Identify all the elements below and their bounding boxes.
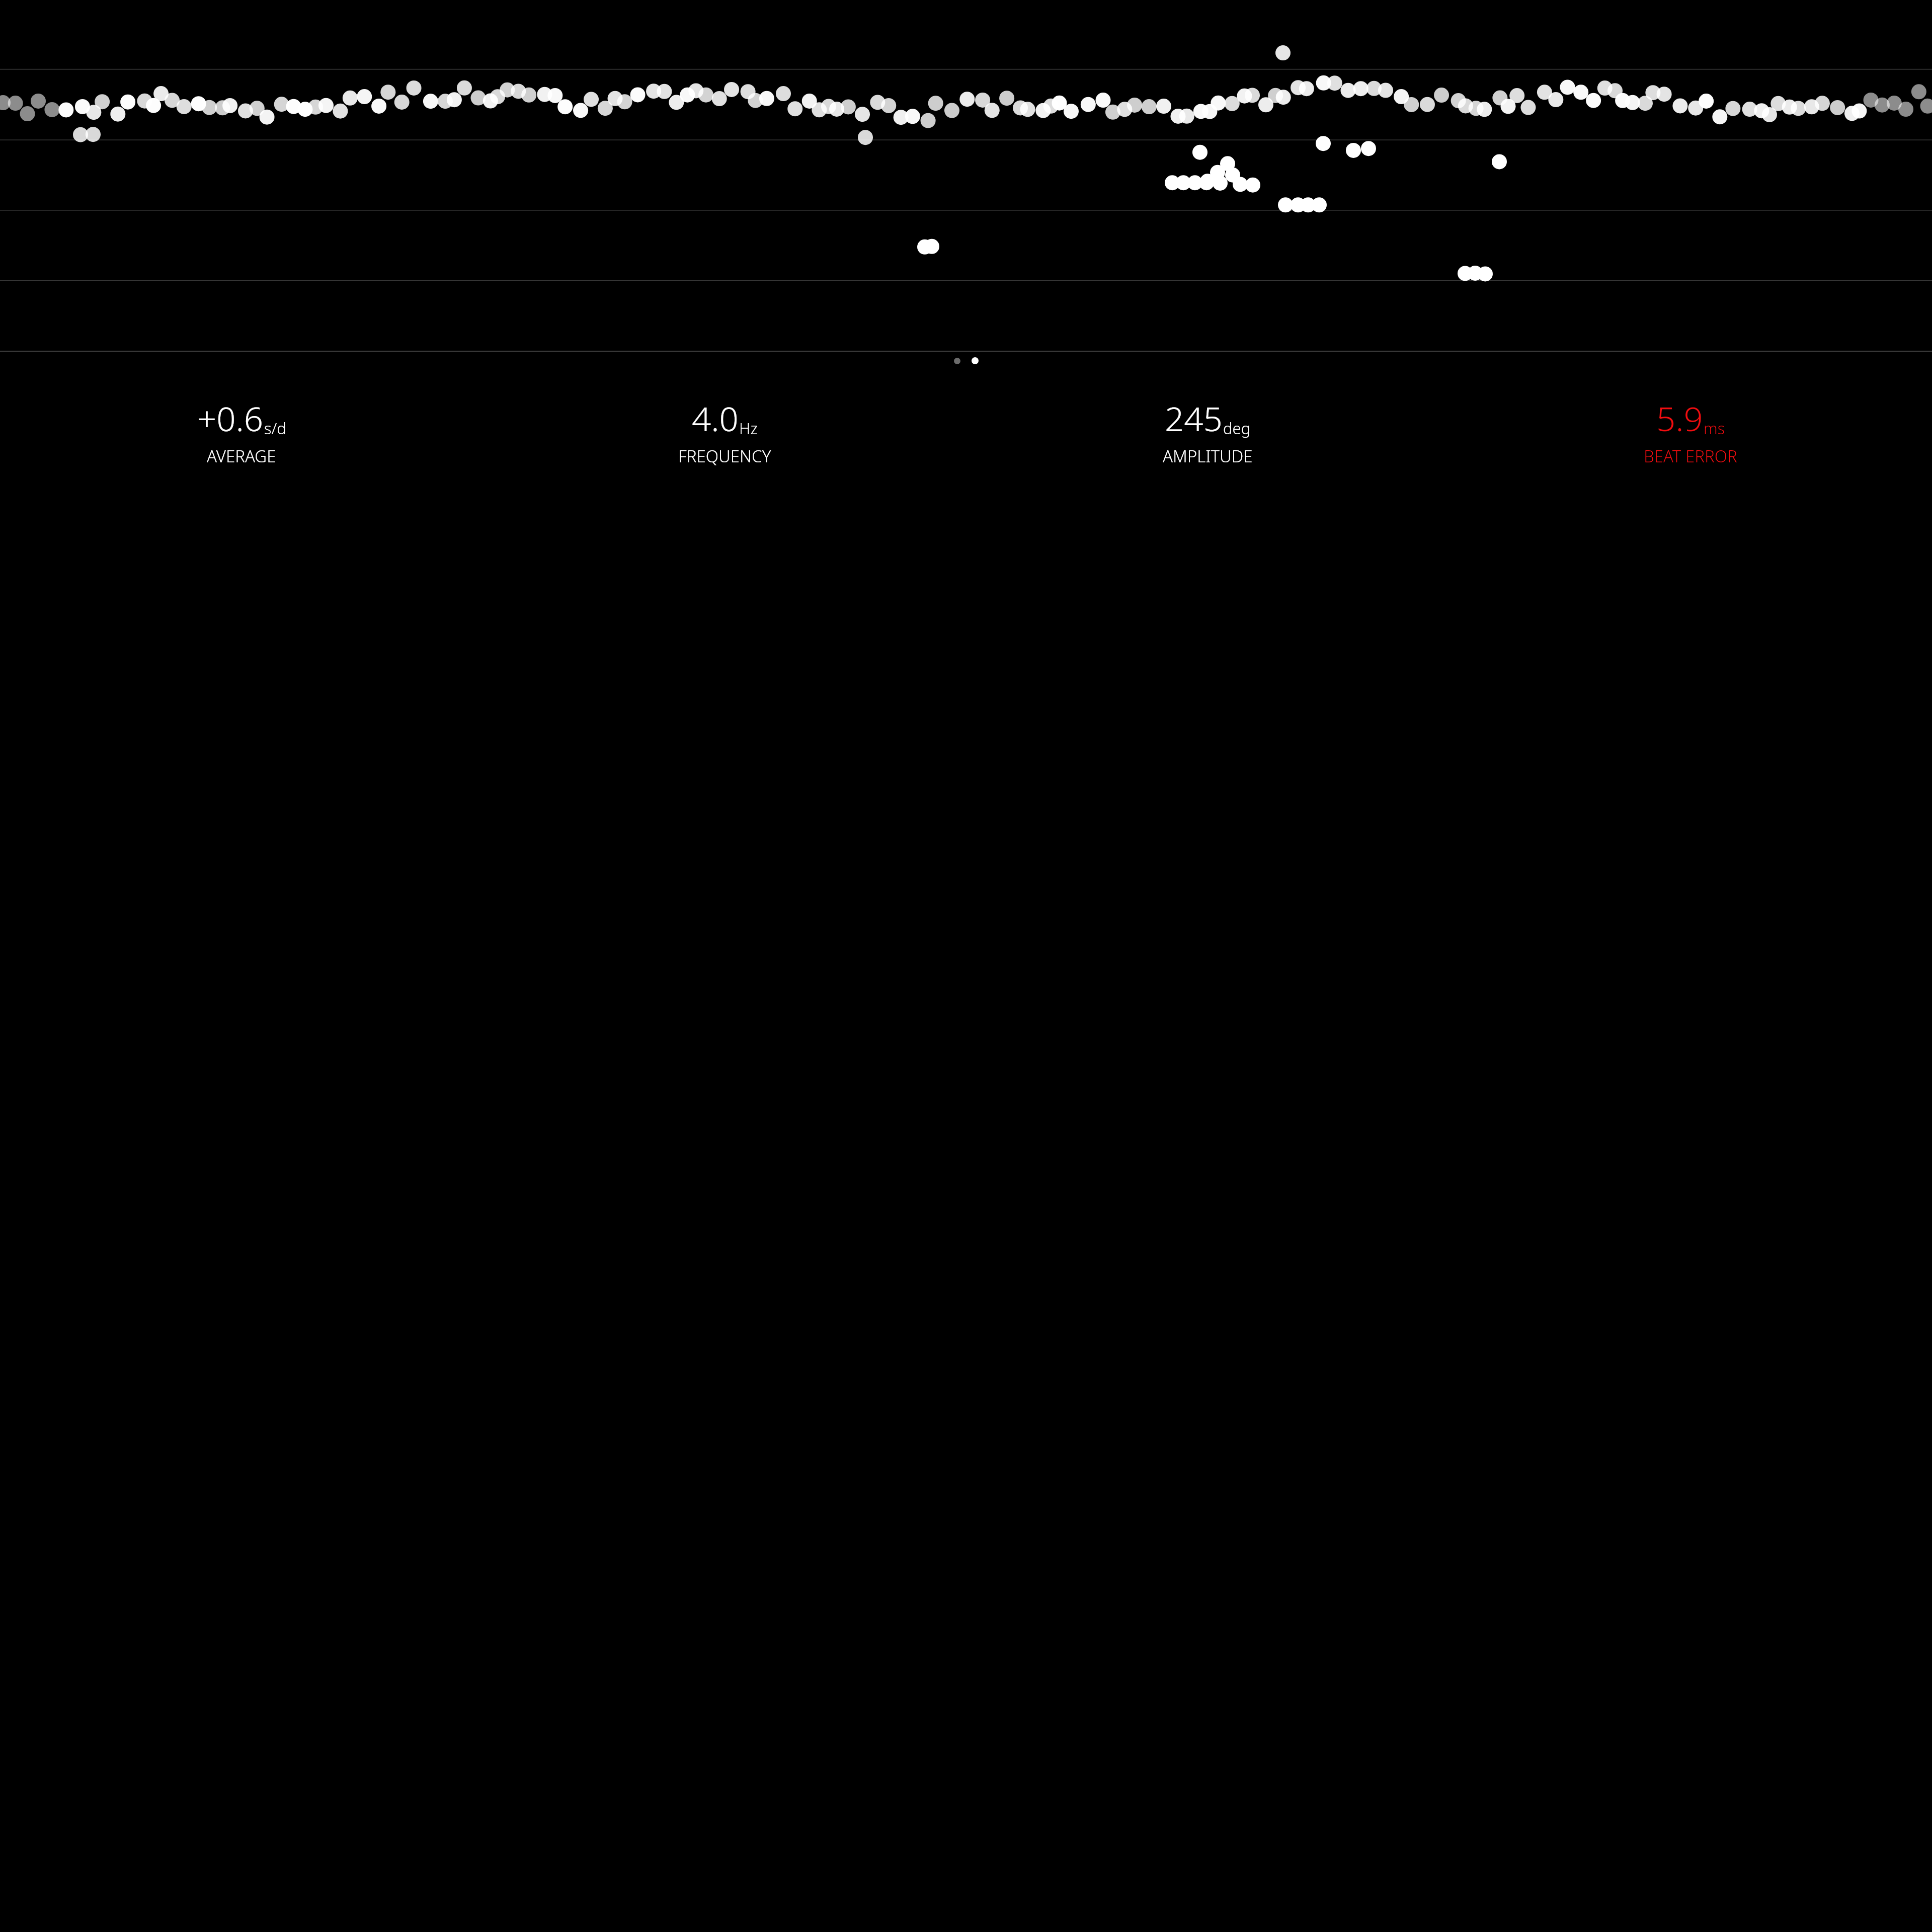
button[interactable]: 245 [966, 395, 1449, 467]
staticText: FREQUENCY [678, 445, 771, 467]
staticText: 4.0 [692, 395, 739, 441]
staticText: Hz [739, 418, 758, 439]
button[interactable]: Rate trace graph [0, 0, 1932, 351]
staticText: +0.6 [197, 395, 264, 441]
button[interactable]: Page 2 of 2 [947, 352, 986, 369]
button[interactable]: +0.6 [0, 395, 483, 467]
staticText: BEAT ERROR [1644, 445, 1737, 467]
button[interactable]: 5.9 [1449, 395, 1932, 467]
staticText: ms [1704, 418, 1725, 439]
staticText: AMPLITUDE [1163, 445, 1253, 467]
staticText: 5.9 [1656, 395, 1703, 441]
staticText: deg [1223, 418, 1251, 439]
staticText: 245 [1165, 395, 1223, 441]
staticText: s/d [264, 418, 286, 439]
staticText: AVERAGE [207, 445, 276, 467]
button[interactable]: 4.0 [483, 395, 966, 467]
